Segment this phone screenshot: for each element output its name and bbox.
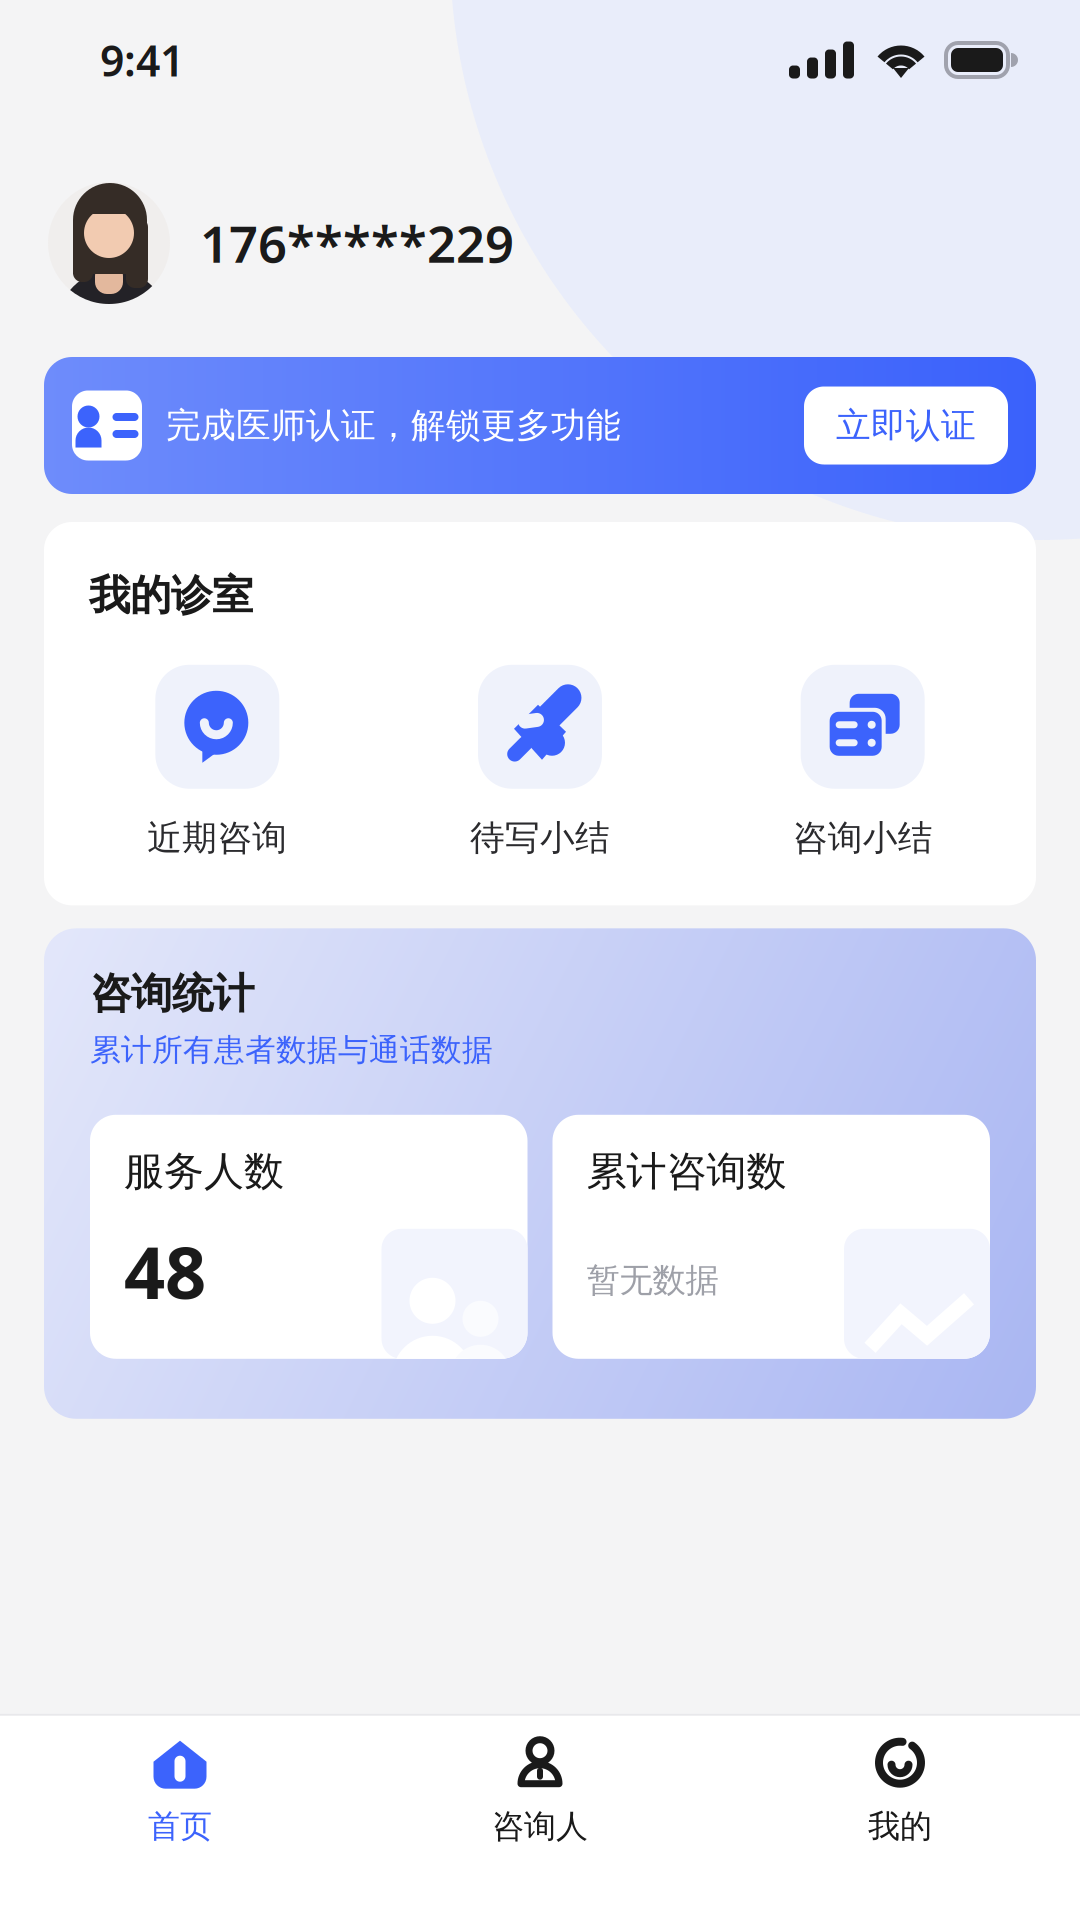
button[interactable]: 近期咨询 <box>56 665 379 859</box>
staticText: 176*****229 <box>200 209 514 277</box>
staticText: 48 <box>124 1223 206 1319</box>
staticText: 9:41 <box>100 32 184 88</box>
button[interactable]: 累计咨询数 <box>552 1115 990 1359</box>
staticText: 完成医师认证，解锁更多功能 <box>166 404 621 447</box>
staticText: 暂无数据 <box>586 1260 718 1301</box>
button[interactable]: 我的 <box>720 1716 1080 1862</box>
staticText: 首页 <box>148 1807 212 1846</box>
staticText: 咨询人 <box>492 1807 588 1846</box>
button[interactable]: 咨询人 <box>360 1716 720 1862</box>
staticText: 我的 <box>868 1807 932 1846</box>
staticText: 累计所有患者数据与通话数据 <box>90 1031 493 1069</box>
button[interactable]: 服务人数 <box>90 1115 527 1359</box>
staticText: 待写小结 <box>470 817 610 859</box>
staticText: 咨询小结 <box>793 817 933 859</box>
button[interactable]: 首页 <box>0 1716 360 1862</box>
button[interactable]: 咨询小结 <box>701 665 1024 859</box>
staticText: 服务人数 <box>124 1147 284 1196</box>
staticText: 我的诊室 <box>89 570 253 621</box>
staticText: 咨询统计 <box>90 968 254 1019</box>
staticText: 累计咨询数 <box>586 1147 786 1196</box>
staticText: 立即认证 <box>836 404 976 447</box>
button[interactable]: 完成医师认证，解锁更多功能 <box>44 357 1036 494</box>
staticText: 近期咨询 <box>147 817 287 859</box>
button[interactable]: 待写小结 <box>379 665 701 859</box>
